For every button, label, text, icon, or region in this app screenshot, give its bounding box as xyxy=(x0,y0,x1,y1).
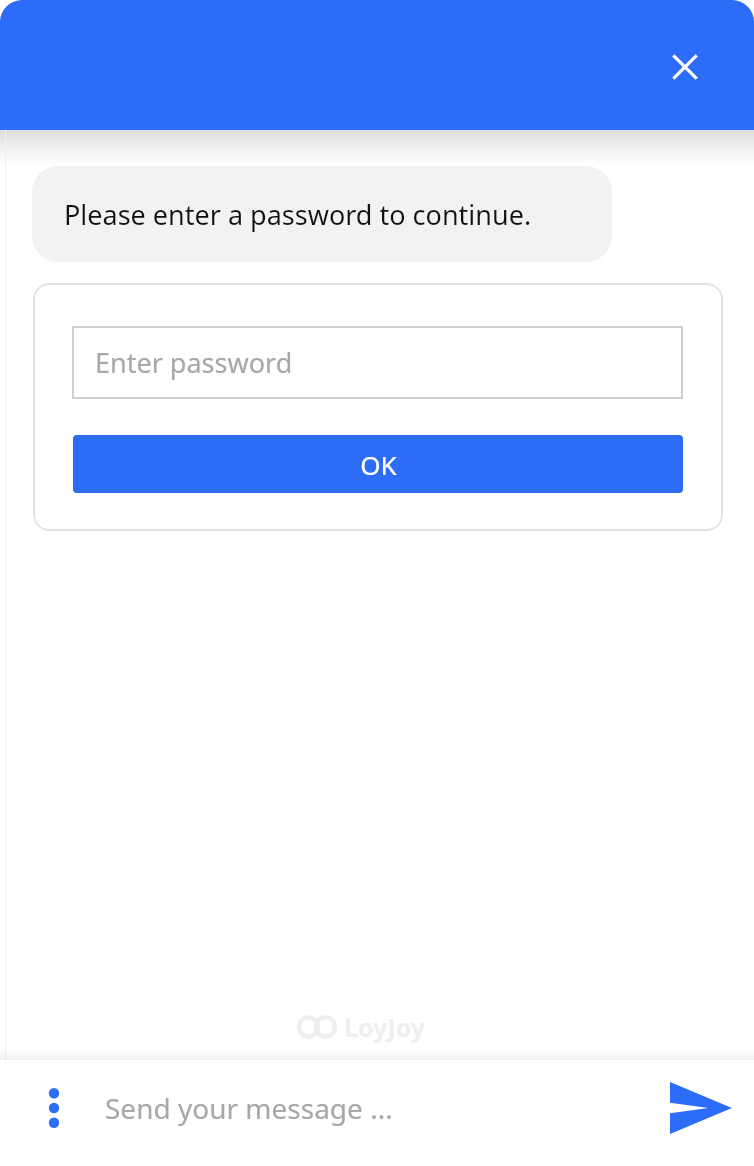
button[interactable]: Please enter a password to continue. xyxy=(32,166,612,262)
staticText: LoyJoy xyxy=(344,1010,426,1044)
button[interactable]: Close xyxy=(656,38,714,96)
staticText: Send your message ... xyxy=(105,1089,393,1127)
button[interactable]: Send xyxy=(660,1067,742,1149)
button[interactable]: More options xyxy=(30,1076,78,1140)
button[interactable]: Send your message ... xyxy=(105,1073,648,1143)
button[interactable]: OK xyxy=(73,435,683,493)
staticText: Please enter a password to continue. xyxy=(64,196,532,233)
staticText: Enter password xyxy=(95,344,293,381)
staticText: OK xyxy=(360,447,397,482)
button[interactable]: Enter password xyxy=(72,326,683,399)
